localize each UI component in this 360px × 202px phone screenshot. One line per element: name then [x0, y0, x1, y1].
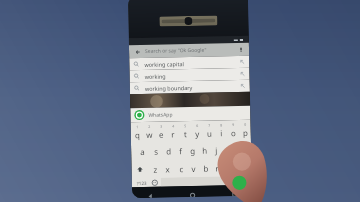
- staticText: v: [191, 163, 197, 174]
- button[interactable]: l: [234, 140, 246, 158]
- button[interactable]: v: [187, 159, 200, 177]
- staticText: working: [144, 72, 167, 80]
- staticText: p: [243, 127, 248, 138]
- staticText: 8: [220, 122, 223, 127]
- button[interactable]: x: [161, 159, 175, 178]
- button[interactable]: 2: [142, 122, 155, 142]
- staticText: i: [220, 127, 223, 138]
- staticText: u: [207, 128, 212, 139]
- staticText: e: [159, 129, 164, 140]
- staticText: working capital: [144, 60, 184, 68]
- staticText: 4: [172, 123, 175, 128]
- staticText: k: [226, 144, 231, 155]
- staticText: 2: [148, 124, 151, 129]
- button[interactable]: z: [148, 160, 162, 178]
- staticText: b: [203, 163, 209, 174]
- staticText: s: [154, 146, 158, 157]
- staticText: m: [225, 162, 234, 173]
- staticText: 6: [196, 123, 199, 128]
- button[interactable]: b: [199, 159, 212, 177]
- staticText: q: [135, 129, 140, 140]
- button[interactable]: Voice search: [236, 45, 245, 54]
- staticText: j: [215, 144, 218, 155]
- button[interactable]: k: [222, 140, 234, 158]
- staticText: x: [165, 163, 171, 174]
- button[interactable]: Space: [161, 176, 237, 187]
- staticText: ?123: [137, 180, 147, 186]
- button[interactable]: 5: [178, 121, 191, 141]
- staticText: n: [215, 162, 221, 173]
- button[interactable]: f: [174, 141, 186, 159]
- staticText: t: [184, 128, 187, 139]
- button[interactable]: Back: [129, 43, 249, 58]
- button[interactable]: 4: [166, 121, 179, 141]
- staticText: WhatsApp: [148, 111, 173, 119]
- button[interactable]: m: [223, 158, 236, 176]
- button[interactable]: 9: [226, 120, 239, 140]
- button[interactable]: 3: [154, 121, 167, 142]
- staticText: z: [153, 164, 158, 175]
- staticText: o: [231, 127, 236, 138]
- staticText: r: [171, 128, 175, 139]
- button[interactable]: working boundary: [130, 80, 250, 94]
- button[interactable]: 8: [214, 120, 227, 140]
- staticText: 5: [184, 123, 187, 128]
- staticText: a: [140, 146, 145, 157]
- staticText: h: [202, 145, 207, 156]
- button[interactable]: 7: [202, 120, 215, 141]
- staticText: g: [190, 145, 195, 156]
- button[interactable]: working: [129, 68, 250, 82]
- button[interactable]: g: [186, 141, 198, 159]
- staticText: working boundary: [145, 84, 193, 92]
- button[interactable]: h: [198, 141, 210, 159]
- staticText: 9: [232, 122, 235, 127]
- button[interactable]: 0: [238, 120, 251, 140]
- staticText: 0: [244, 122, 247, 127]
- staticText: d: [166, 145, 171, 156]
- staticText: l: [239, 144, 242, 155]
- button[interactable]: d: [162, 141, 174, 159]
- staticText: w: [146, 129, 153, 140]
- button[interactable]: s: [149, 142, 162, 160]
- button[interactable]: Home: [187, 190, 197, 197]
- button[interactable]: j: [210, 140, 222, 158]
- button[interactable]: 1: [130, 122, 143, 142]
- staticText: f: [179, 145, 182, 156]
- button[interactable]: Emoji: [149, 178, 161, 187]
- button[interactable]: 6: [190, 121, 203, 141]
- button[interactable]: a: [136, 142, 149, 160]
- staticText: .: [242, 177, 244, 185]
- button[interactable]: ?123: [135, 178, 149, 187]
- button[interactable]: Shift: [131, 160, 149, 178]
- button[interactable]: c: [174, 159, 188, 177]
- staticText: 3: [160, 124, 163, 129]
- staticText: c: [179, 163, 184, 174]
- button[interactable]: Back: [133, 47, 142, 56]
- button[interactable]: Back: [145, 191, 155, 198]
- button[interactable]: working capital: [129, 56, 249, 70]
- button[interactable]: n: [211, 158, 224, 176]
- button[interactable]: Backspace: [235, 158, 252, 176]
- staticText: 1: [136, 124, 139, 129]
- button[interactable]: Recents: [229, 189, 239, 196]
- staticText: y: [195, 128, 200, 139]
- staticText: 7: [208, 123, 211, 128]
- button[interactable]: WhatsApp: [130, 106, 250, 122]
- staticText: Search or say "Ok Google": [145, 47, 207, 55]
- button[interactable]: Period: [237, 176, 249, 185]
